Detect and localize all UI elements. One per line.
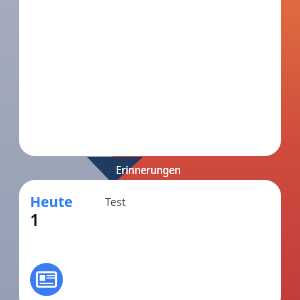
staticText: 1 [30,209,40,231]
button[interactable]: Erinnerungen [30,263,63,296]
staticText: Test [105,194,126,209]
button[interactable]: Heute [19,180,281,300]
staticText: Heute [30,192,73,211]
staticText: Erinnerungen [116,163,181,177]
button[interactable] [19,0,281,156]
